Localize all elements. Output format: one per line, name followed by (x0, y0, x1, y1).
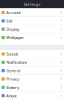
button[interactable]: Edit (0, 17, 64, 25)
staticText: General (6, 68, 20, 73)
staticText: Account (6, 10, 20, 15)
button[interactable]: Account (0, 8, 64, 16)
button[interactable]: Wallpaper (0, 34, 64, 42)
button[interactable]: Display (0, 25, 64, 33)
button[interactable]: Sounds (0, 50, 64, 58)
button[interactable]: Battery (0, 83, 64, 91)
button[interactable]: General (0, 67, 64, 75)
staticText: Settings (23, 2, 40, 7)
staticText: Display (6, 26, 19, 32)
staticText: Battery (6, 85, 19, 90)
staticText: Edit (6, 18, 12, 23)
button[interactable]: About (0, 92, 64, 100)
staticText: Wallpaper (6, 35, 24, 40)
staticText: Sounds (6, 51, 18, 57)
button[interactable]: Privacy (0, 75, 64, 83)
button[interactable]: Notifications (0, 58, 64, 66)
staticText: Notifications (6, 60, 27, 65)
staticText: About (6, 93, 16, 98)
staticText: Privacy (6, 76, 19, 82)
